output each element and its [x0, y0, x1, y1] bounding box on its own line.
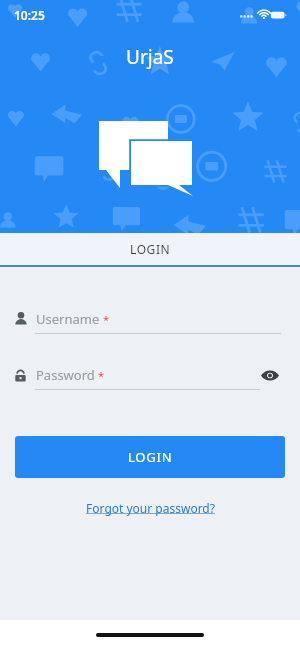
staticText: *	[98, 368, 105, 383]
staticText: Password	[36, 366, 95, 384]
staticText: Username	[36, 310, 100, 328]
button[interactable]: Forgot your password?	[82, 496, 219, 520]
staticText: UrjaS	[126, 44, 174, 70]
button[interactable]: Show password	[259, 364, 281, 386]
staticText: Forgot your password?	[86, 500, 215, 516]
button[interactable]: LOGIN	[15, 436, 285, 478]
button[interactable]: LOGIN	[0, 233, 300, 265]
staticText: LOGIN	[130, 241, 171, 257]
staticText: 10:25	[14, 7, 45, 23]
staticText: LOGIN	[128, 448, 173, 466]
button[interactable]: Password	[14, 361, 281, 389]
button[interactable]: Username	[14, 305, 281, 333]
staticText: *	[103, 312, 110, 327]
